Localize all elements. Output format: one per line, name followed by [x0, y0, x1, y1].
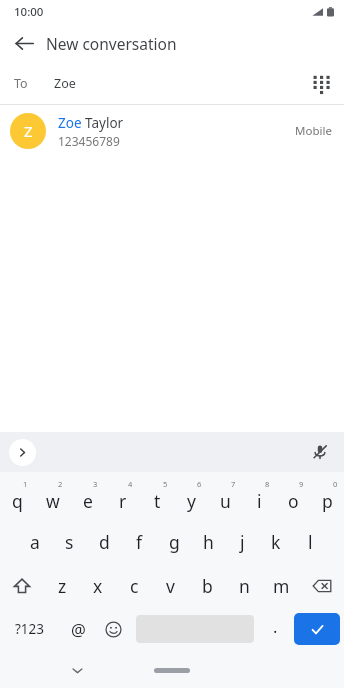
staticText: q [12, 489, 23, 513]
staticText: o [288, 489, 299, 513]
staticText: Zoe [54, 75, 76, 92]
staticText: k [271, 530, 281, 554]
button[interactable]: Z [0, 105, 344, 157]
staticText: 9 [299, 479, 304, 489]
staticText: r [119, 489, 127, 513]
staticText: b [202, 574, 213, 598]
staticText: j [240, 530, 245, 554]
staticText: 8 [265, 479, 270, 489]
staticText: 1 [23, 479, 28, 489]
button[interactable]: 3 [70, 476, 105, 520]
staticText: 2 [58, 479, 63, 489]
button[interactable]: 6 [174, 476, 208, 520]
staticText: . [273, 615, 278, 637]
button[interactable]: Back [6, 25, 42, 61]
button[interactable]: h [191, 520, 225, 564]
staticText: 5 [163, 479, 168, 489]
staticText: Zoe Taylor [58, 114, 124, 132]
staticText: 4 [128, 479, 133, 489]
staticText: 0 [333, 479, 338, 489]
button[interactable]: 1 [0, 476, 35, 520]
staticText: 10:00 [14, 4, 44, 20]
button[interactable]: n [226, 564, 263, 608]
button[interactable]: ?123 [0, 608, 60, 650]
button[interactable]: j [225, 520, 259, 564]
staticText: 3 [93, 479, 98, 489]
button[interactable]: 0 [310, 476, 344, 520]
staticText: v [166, 574, 175, 598]
button[interactable]: s [52, 520, 87, 564]
staticText: s [65, 530, 74, 554]
button[interactable]: Backspace [300, 564, 344, 608]
button[interactable]: a [17, 520, 52, 564]
button[interactable]: 5 [140, 476, 174, 520]
button[interactable]: k [259, 520, 293, 564]
staticText: ?123 [15, 620, 45, 638]
button[interactable]: v [152, 564, 189, 608]
button[interactable]: Dial pad [302, 65, 338, 101]
button[interactable]: @ [60, 608, 96, 650]
button[interactable]: 2 [35, 476, 70, 520]
staticText: a [30, 530, 40, 554]
button[interactable]: x [80, 564, 116, 608]
button[interactable]: Voice input muted [304, 436, 336, 468]
staticText: 123456789 [58, 133, 120, 149]
button[interactable]: l [293, 520, 327, 564]
button[interactable]: Expand suggestions [9, 439, 36, 466]
button[interactable]: Enter [294, 613, 340, 645]
button[interactable]: 4 [105, 476, 140, 520]
button[interactable]: 8 [242, 476, 276, 520]
staticText: z [58, 574, 67, 598]
staticText: 6 [197, 479, 202, 489]
staticText: e [83, 489, 93, 513]
button[interactable]: . [260, 608, 290, 650]
button[interactable]: m [263, 564, 300, 608]
staticText: i [257, 489, 262, 513]
staticText: m [273, 574, 290, 598]
staticText: p [322, 489, 333, 513]
staticText: u [220, 489, 231, 513]
staticText: Mobile [295, 123, 332, 139]
staticText: f [136, 530, 143, 554]
button[interactable]: g [157, 520, 191, 564]
staticText: w [46, 489, 60, 513]
staticText: x [93, 574, 103, 598]
staticText: t [154, 489, 161, 513]
staticText: To [14, 75, 28, 92]
staticText: l [308, 530, 313, 554]
button[interactable]: z [44, 564, 80, 608]
button[interactable]: 9 [276, 476, 310, 520]
staticText: n [239, 574, 250, 598]
button[interactable]: Emoji [96, 608, 130, 650]
staticText: New conversation [46, 33, 177, 54]
staticText: h [203, 530, 214, 554]
button[interactable]: Shift [0, 564, 44, 608]
button[interactable]: d [87, 520, 122, 564]
staticText: d [99, 530, 110, 554]
button[interactable]: c [116, 564, 152, 608]
staticText: Z [24, 121, 33, 141]
staticText: y [187, 489, 196, 513]
staticText: g [169, 530, 180, 554]
button[interactable]: b [189, 564, 226, 608]
button[interactable]: 7 [208, 476, 242, 520]
staticText: c [130, 574, 139, 598]
staticText: @ [71, 618, 86, 640]
button[interactable]: Hide keyboard [60, 653, 94, 687]
staticText: 7 [231, 479, 236, 489]
button[interactable]: f [122, 520, 157, 564]
